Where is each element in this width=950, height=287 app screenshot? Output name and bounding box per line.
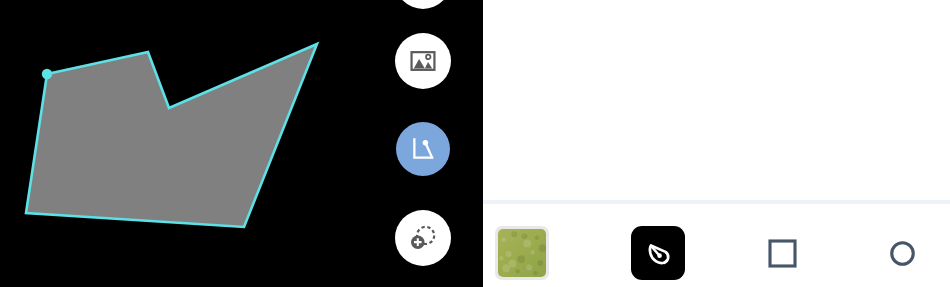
button[interactable]: Ellipse tool	[875, 226, 929, 280]
button[interactable]: Pen tool	[631, 226, 685, 280]
button[interactable]: Undo	[395, 0, 451, 9]
button[interactable]: Add region	[395, 210, 451, 266]
button[interactable]: Rectangle tool	[755, 226, 809, 280]
button[interactable]: Texture fill	[495, 226, 549, 280]
button[interactable]: Measure angle	[396, 122, 450, 176]
button[interactable]: Add image	[395, 33, 451, 89]
